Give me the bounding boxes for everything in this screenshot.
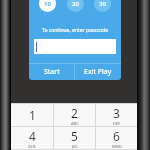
- button[interactable]: 10: [39, 0, 56, 12]
- button[interactable]: Passcode field: [34, 39, 116, 54]
- staticText: 5: [71, 128, 78, 144]
- staticText: Exit Play: [84, 67, 112, 77]
- staticText: 2: [71, 105, 78, 121]
- button[interactable]: 4: [11, 127, 53, 149]
- button[interactable]: 2: [54, 104, 95, 126]
- staticText: 30: [99, 0, 106, 8]
- staticText: 1: [29, 107, 36, 123]
- staticText: 4: [29, 128, 36, 144]
- staticText: GHI: [28, 144, 36, 149]
- button[interactable]: 30: [94, 0, 111, 12]
- staticText: 10: [44, 0, 51, 8]
- button[interactable]: 6: [96, 127, 137, 149]
- staticText: 20: [72, 0, 79, 8]
- button[interactable]: Exit Play: [75, 64, 121, 80]
- staticText: To continue, enter passcode: [29, 27, 121, 34]
- button[interactable]: 5: [54, 127, 95, 149]
- staticText: Start: [44, 67, 60, 77]
- staticText: ABC: [71, 121, 79, 126]
- staticText: 3: [113, 105, 120, 121]
- button[interactable]: 1: [11, 104, 53, 126]
- button[interactable]: 20: [67, 0, 84, 12]
- staticText: JKL: [72, 144, 78, 149]
- staticText: 6: [113, 128, 120, 144]
- button[interactable]: 3: [96, 104, 137, 126]
- staticText: DEF: [113, 121, 121, 126]
- button[interactable]: Start: [29, 64, 74, 80]
- staticText: MNO: [112, 144, 122, 149]
